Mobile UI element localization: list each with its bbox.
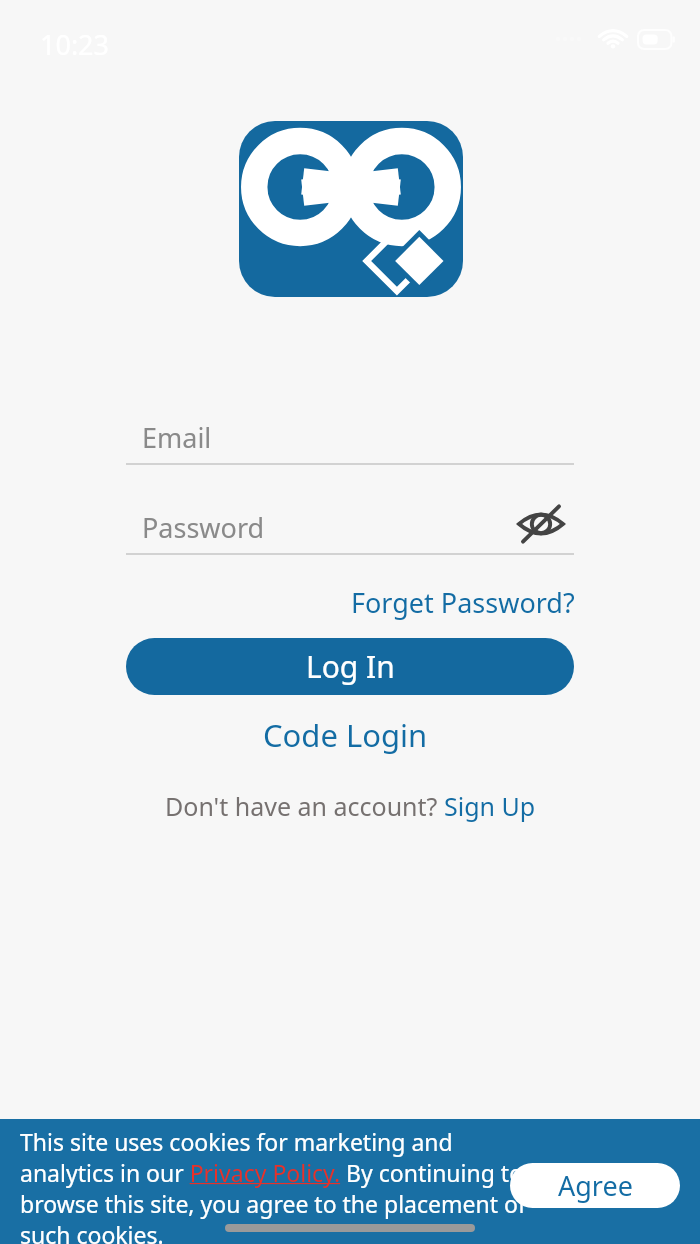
button[interactable]: Log In (126, 638, 574, 695)
staticText: Log In (306, 646, 395, 687)
button[interactable]: Show password (508, 498, 574, 550)
staticText: Email (142, 419, 212, 456)
staticText: such cookies. (20, 1219, 164, 1244)
staticText: Password (142, 509, 265, 546)
staticText: analytics in our Privacy Policy. By cont… (20, 1157, 524, 1188)
staticText: Code Login (263, 714, 428, 756)
staticText: Don't have an account? (165, 789, 444, 823)
button[interactable]: Sign Up (444, 789, 536, 823)
staticText: browse this site, you agree to the place… (20, 1188, 526, 1219)
staticText: Forget Password? (351, 584, 575, 621)
button[interactable]: Forget Password? (351, 584, 575, 621)
button[interactable]: Agree (510, 1163, 680, 1208)
staticText: Sign Up (444, 789, 536, 823)
staticText: Agree (558, 1167, 633, 1204)
staticText: This site uses cookies for marketing and (20, 1126, 453, 1157)
button[interactable]: Code Login (263, 714, 428, 756)
